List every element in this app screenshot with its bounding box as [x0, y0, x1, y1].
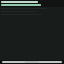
button[interactable]	[1, 14, 63, 15]
button[interactable]	[1, 8, 63, 9]
button[interactable]	[1, 4, 41, 6]
button[interactable]	[1, 11, 63, 12]
button[interactable]	[1, 1, 38, 3]
button[interactable]: Continue	[2, 61, 62, 63]
